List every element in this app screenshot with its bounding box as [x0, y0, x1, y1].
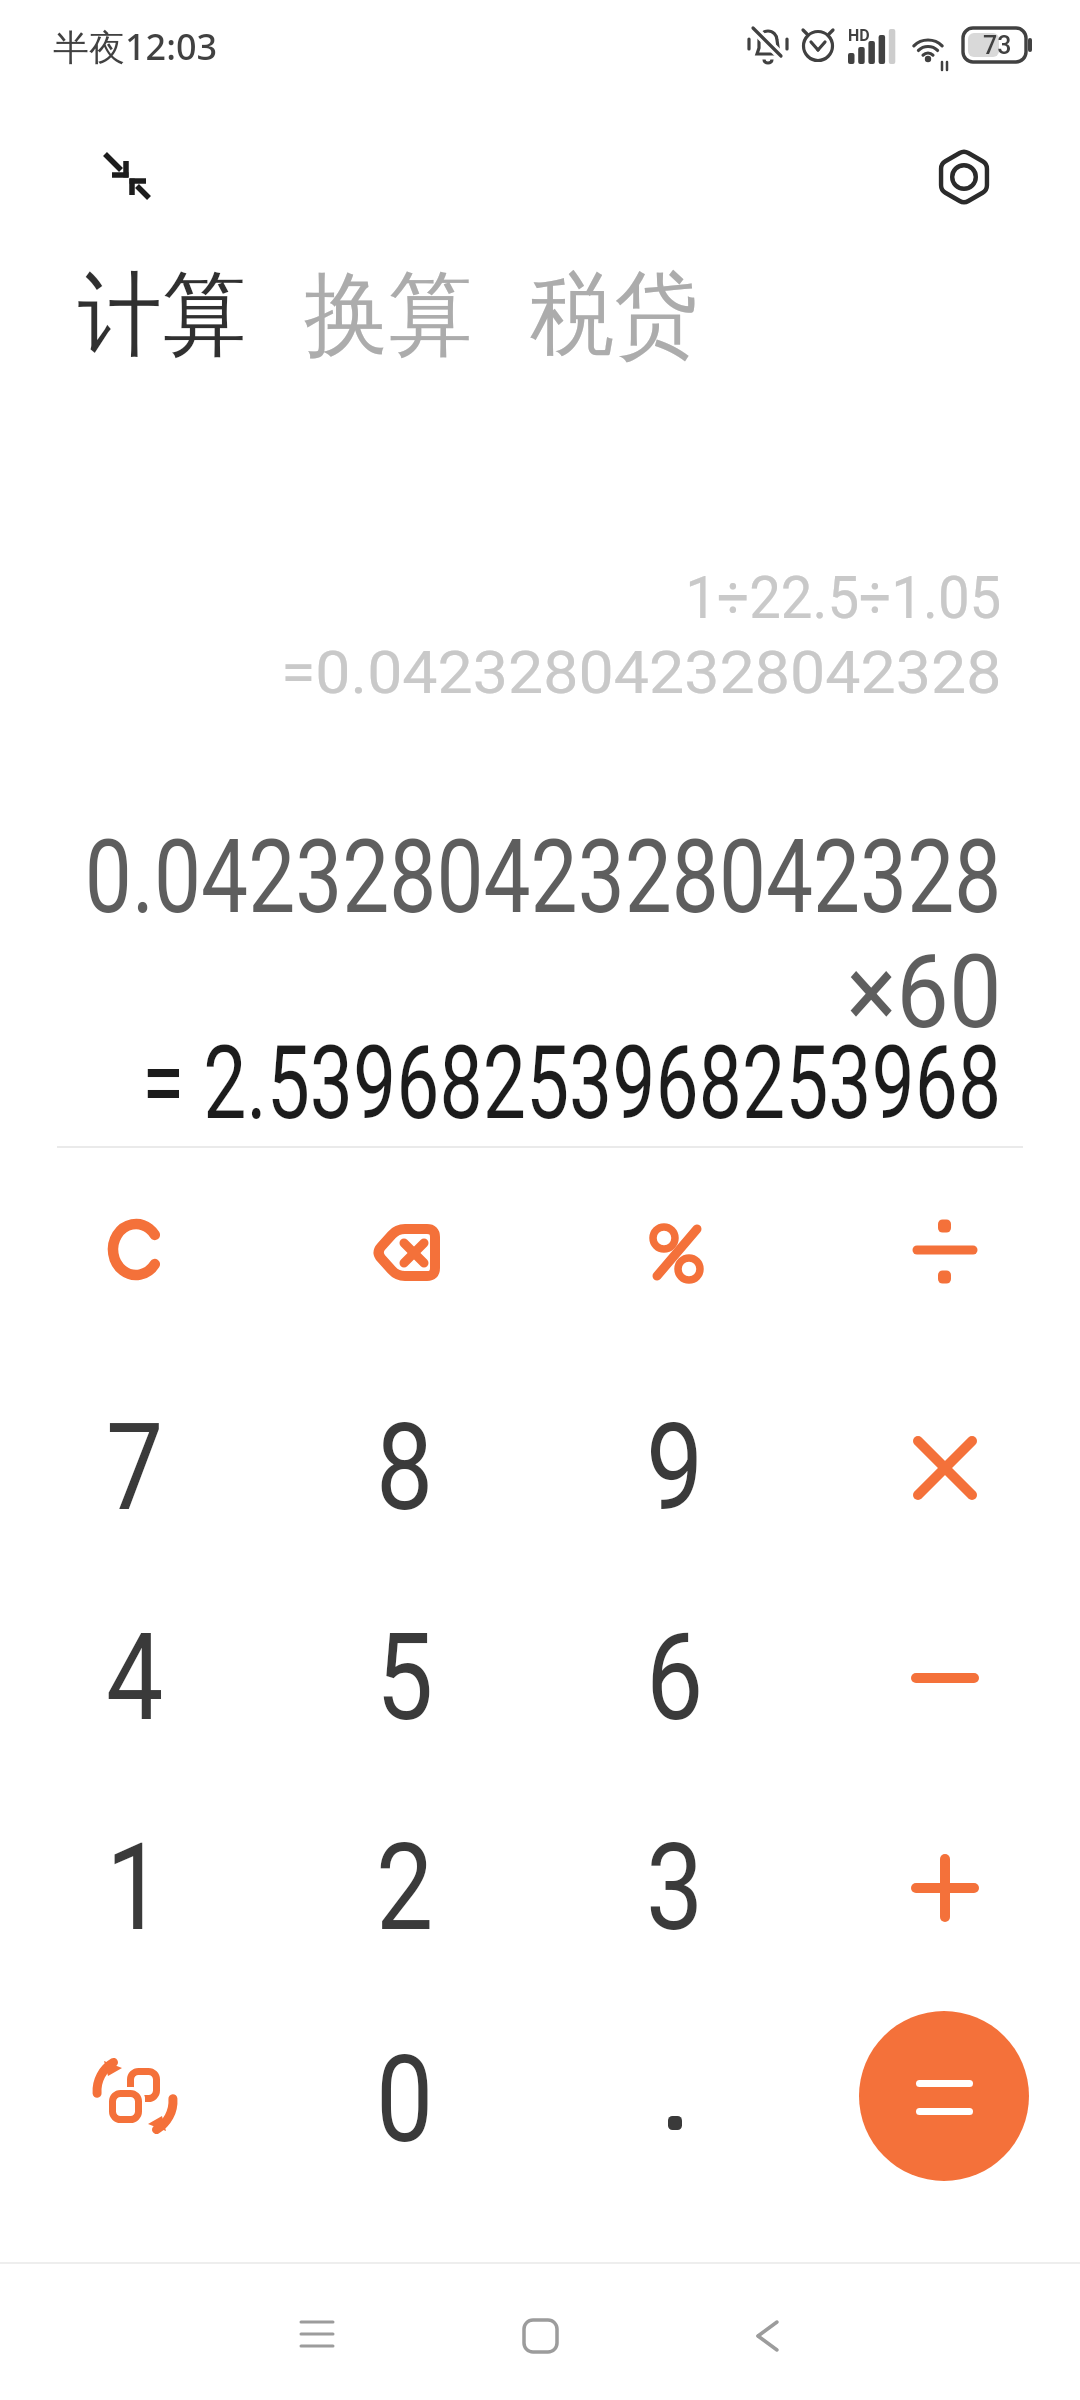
staticText: 1÷22.5÷1.05 [685, 562, 1002, 632]
staticText: 6 [646, 1608, 704, 1749]
button[interactable]: 0 [315, 2010, 495, 2190]
button[interactable]: 7 [45, 1378, 225, 1558]
staticText: 换算 [304, 258, 472, 373]
button[interactable]: 5 [315, 1588, 495, 1768]
button[interactable] [855, 1798, 1035, 1978]
button[interactable] [737, 2305, 797, 2365]
staticText: 9 [646, 1398, 704, 1539]
button[interactable]: 计算 [78, 258, 246, 373]
staticText: 0.042328042328042328 [85, 818, 1002, 937]
staticText: = 2.53968253968253968 [142, 1023, 1002, 1144]
staticText: 1 [106, 1818, 164, 1959]
button[interactable]: 换算 [304, 258, 472, 373]
staticText: HD [848, 26, 870, 45]
staticText: 8 [376, 1398, 434, 1539]
button[interactable] [855, 1160, 1035, 1340]
button[interactable] [510, 2305, 570, 2365]
button[interactable] [933, 145, 1005, 217]
button[interactable] [585, 1160, 765, 1340]
button[interactable]: 3 [585, 1798, 765, 1978]
button[interactable] [99, 148, 167, 216]
staticText: 3 [646, 1818, 704, 1959]
button[interactable] [45, 1160, 225, 1340]
button[interactable]: 1 [45, 1798, 225, 1978]
button[interactable] [45, 2006, 225, 2186]
staticText: =0.042328042328042328 [281, 637, 1002, 707]
staticText: 半夜12:03 [53, 22, 218, 71]
staticText: ×60 [846, 933, 1002, 1052]
button[interactable] [287, 2305, 347, 2365]
button[interactable]: 6 [585, 1588, 765, 1768]
button[interactable] [855, 1588, 1035, 1768]
button[interactable] [585, 2006, 765, 2186]
staticText: 7 [106, 1398, 164, 1539]
button[interactable]: 4 [45, 1588, 225, 1768]
button[interactable]: 税贷 [530, 258, 698, 373]
button[interactable] [855, 1378, 1035, 1558]
button[interactable]: 2 [315, 1798, 495, 1978]
button[interactable]: 8 [315, 1378, 495, 1558]
staticText: 税贷 [530, 258, 698, 373]
staticText: 计算 [78, 258, 246, 373]
staticText: 0 [376, 2030, 434, 2171]
staticText: 73 [983, 31, 1012, 60]
button[interactable]: 9 [585, 1378, 765, 1558]
staticText: 4 [106, 1608, 164, 1749]
button[interactable] [855, 2006, 1035, 2186]
button[interactable] [315, 1160, 495, 1340]
staticText: 5 [376, 1608, 434, 1749]
staticText: 2 [376, 1818, 434, 1959]
